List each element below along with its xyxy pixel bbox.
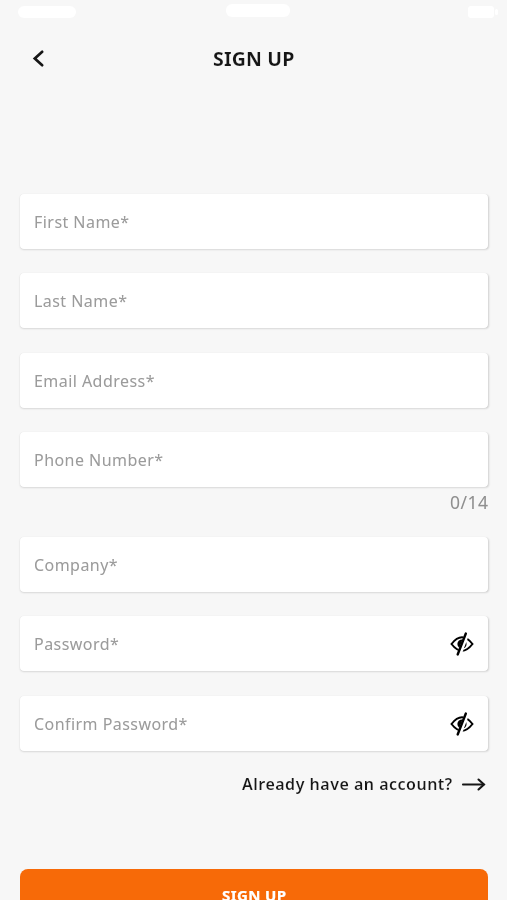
button[interactable]: Phone Number* — [20, 432, 488, 487]
staticText: Email Address* — [34, 370, 155, 392]
button[interactable]: First Name* — [20, 194, 488, 249]
staticText: SIGN UP — [222, 885, 287, 900]
staticText: Phone Number* — [34, 449, 164, 471]
staticText: Company* — [34, 554, 119, 576]
staticText: Already have an account? — [242, 773, 453, 795]
button[interactable]: Company* — [20, 537, 488, 592]
button[interactable]: Email Address* — [20, 353, 488, 408]
staticText: First Name* — [34, 211, 130, 233]
button[interactable]: Last Name* — [20, 273, 488, 328]
button[interactable]: Password* — [20, 616, 488, 671]
staticText: Last Name* — [34, 290, 128, 312]
button[interactable]: Confirm Password* — [20, 696, 488, 751]
button[interactable]: SIGN UP — [20, 869, 488, 900]
staticText: SIGN UP — [213, 45, 295, 72]
staticText: Confirm Password* — [34, 713, 188, 735]
staticText: 0/14 — [450, 490, 489, 514]
staticText: Password* — [34, 633, 120, 655]
button[interactable] — [25, 44, 51, 72]
button[interactable]: Already have an account? — [242, 770, 486, 798]
